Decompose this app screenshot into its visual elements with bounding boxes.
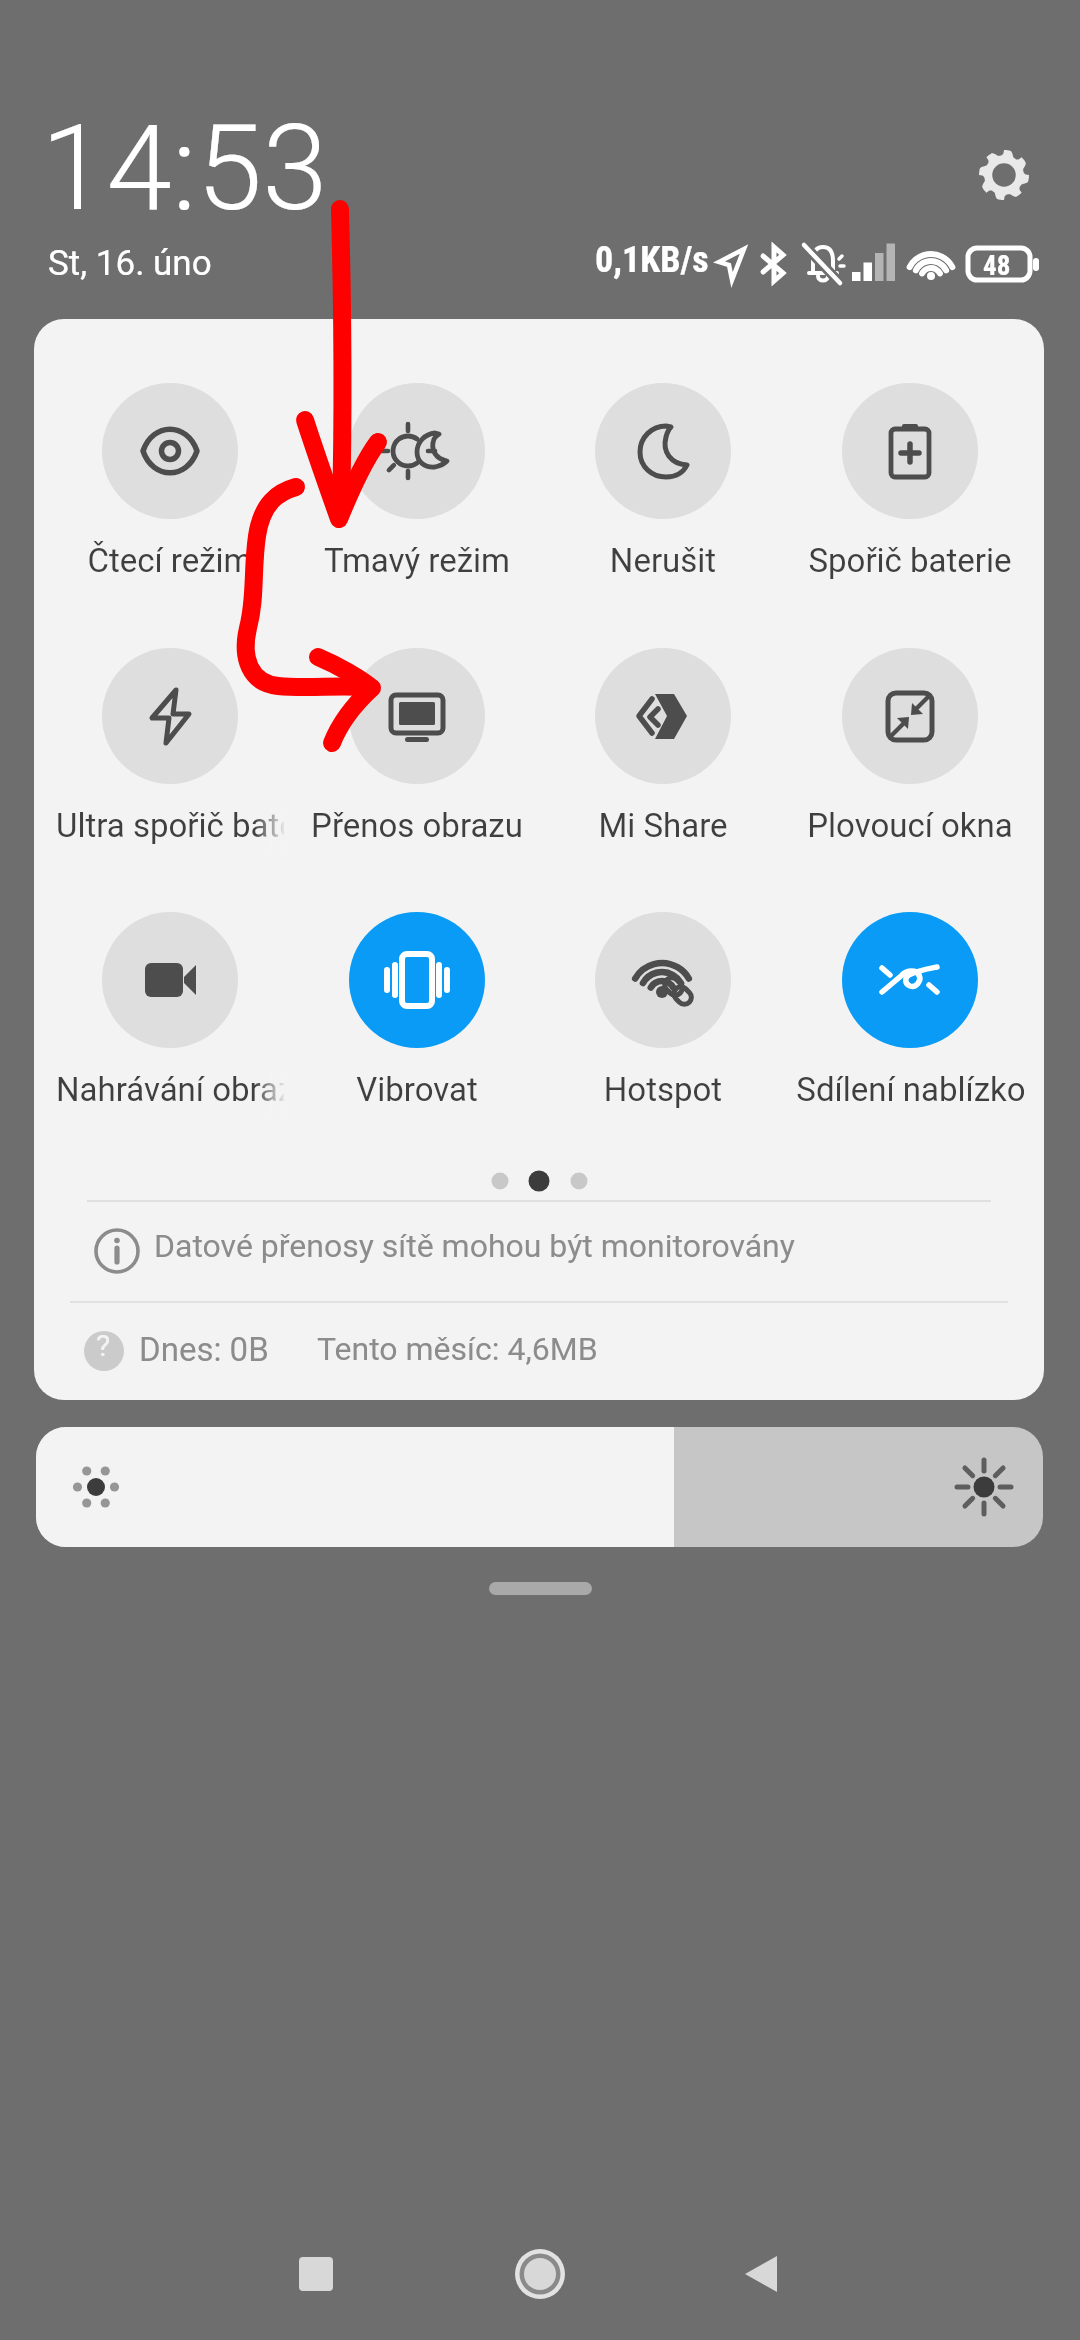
staticText: Tento měsíc: 4,6MB: [317, 1330, 598, 1368]
staticText: Mi Share: [549, 806, 777, 845]
staticText: Ultra spořič baterie: [56, 806, 284, 845]
staticText: ?: [96, 1328, 111, 1363]
button[interactable]: Datové přenosy sítě mohou být monitorová…: [88, 1207, 992, 1295]
button[interactable]: Tmavý režim: [303, 383, 531, 583]
button[interactable]: Plovoucí okna: [796, 648, 1024, 848]
button[interactable]: Vibrovat: [303, 912, 531, 1112]
button[interactable]: Ultra spořič baterie: [56, 648, 284, 848]
staticText: Tmavý režim: [303, 541, 531, 580]
button[interactable]: Mi Share: [549, 648, 777, 848]
button[interactable]: Settings: [964, 135, 1044, 215]
button[interactable]: Sdílení nablízko: [796, 912, 1024, 1112]
staticText: Plovoucí okna: [796, 806, 1024, 845]
button[interactable]: Recents: [280, 2238, 352, 2310]
button[interactable]: Přenos obrazu: [303, 648, 531, 848]
staticText: Čtecí režim: [56, 541, 284, 580]
button[interactable]: Nerušit: [549, 383, 777, 583]
button[interactable]: Nahrávání obrazovky: [56, 912, 284, 1112]
button[interactable]: ?: [74, 1311, 994, 1391]
staticText: Nerušit: [549, 541, 777, 580]
staticText: Dnes: 0B: [139, 1330, 269, 1369]
staticText: Datové přenosy sítě mohou být monitorová…: [154, 1227, 795, 1265]
staticText: 14:53: [41, 100, 328, 238]
button[interactable]: Čtecí režim: [56, 383, 284, 583]
button[interactable]: Spořič baterie: [796, 383, 1024, 583]
staticText: Nahrávání obrazovky: [56, 1070, 284, 1109]
button[interactable]: Back: [725, 2238, 797, 2310]
button[interactable]: Hotspot: [549, 912, 777, 1112]
staticText: Přenos obrazu: [303, 806, 531, 845]
button[interactable]: Brightness: [36, 1427, 1043, 1547]
staticText: 0,1KB/s: [595, 239, 709, 281]
button[interactable]: Home: [504, 2238, 576, 2310]
staticText: Spořič baterie: [796, 541, 1024, 580]
staticText: St, 16. úno: [48, 243, 212, 284]
staticText: Sdílení nablízko: [796, 1070, 1024, 1109]
staticText: 48: [983, 250, 1011, 282]
staticText: Hotspot: [549, 1070, 777, 1109]
staticText: Vibrovat: [303, 1070, 531, 1109]
